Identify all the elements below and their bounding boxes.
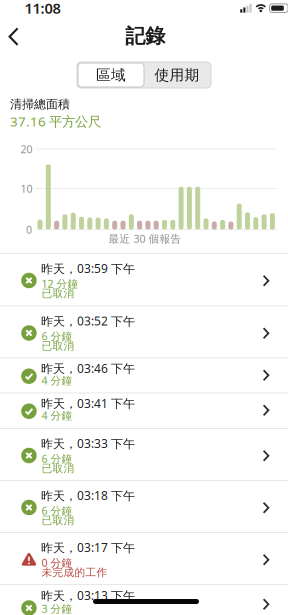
staticText: 3 分鐘 [41,601,72,615]
staticText: 使用期 [154,66,199,84]
staticText: 已取消 [41,462,74,475]
staticText: 4 分鐘 [41,408,72,422]
staticText: 昨天，03:46 下午 [41,360,135,376]
staticText: 12 分鐘 [41,276,78,291]
button[interactable] [2,24,24,49]
staticText: 記錄 [125,24,165,48]
button[interactable]: 昨天，03:33 下午 [0,428,288,480]
staticText: 昨天，03:33 下午 [41,435,135,451]
staticText: 已取消 [41,514,74,527]
button[interactable]: 昨天，03:46 下午 [0,357,288,392]
staticText: 0 分鐘 [41,555,72,570]
staticText: 昨天，03:52 下午 [41,313,135,329]
staticText: 6 分鐘 [41,503,72,518]
staticText: 已取消 [41,339,74,353]
staticText: 10 [20,181,32,196]
button[interactable]: 昨天，03:59 下午 [0,253,288,305]
staticText: 區域 [96,66,126,84]
staticText: 昨天，03:18 下午 [41,487,135,503]
staticText: 20 [20,142,32,156]
button[interactable]: 昨天，03:17 下午 [0,532,288,584]
staticText: 已取消 [41,287,74,300]
staticText: 昨天，03:59 下午 [41,260,135,276]
staticText: 37.16 平方公尺 [10,112,101,130]
staticText: 11:08 [24,0,60,18]
staticText: 昨天，03:13 下午 [41,587,135,603]
button[interactable]: 昨天，03:52 下午 [0,305,288,357]
staticText: 未完成的工作 [41,566,107,579]
staticText: 6 分鐘 [41,329,72,343]
button[interactable]: 昨天，03:13 下午 [0,584,288,615]
button[interactable]: 使用期 [144,63,210,87]
staticText: 清掃總面積 [10,97,70,112]
staticText: 昨天，03:17 下午 [41,539,135,555]
staticText: 最近 30 個報告 [108,231,181,246]
staticText: 0 [26,222,32,237]
button[interactable]: 昨天，03:18 下午 [0,480,288,532]
staticText: 6 分鐘 [41,451,72,466]
staticText: 4 分鐘 [41,373,72,387]
button[interactable]: 昨天，03:41 下午 [0,392,288,428]
button[interactable]: 區域 [78,63,144,87]
staticText: 昨天，03:41 下午 [41,395,135,411]
